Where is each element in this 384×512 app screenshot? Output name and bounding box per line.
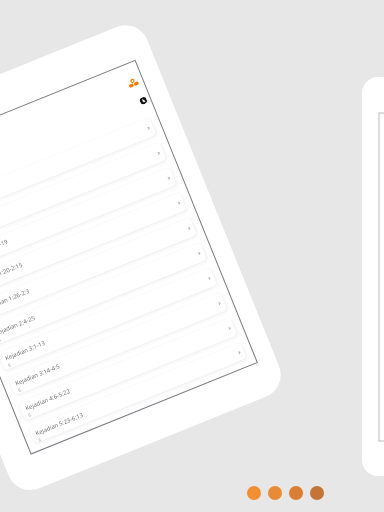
staticText: 5 bbox=[17, 387, 22, 394]
button[interactable]: Page indicator bbox=[310, 486, 324, 500]
staticText: 5 bbox=[38, 437, 42, 442]
button[interactable]: Page indicator bbox=[289, 486, 303, 500]
staticText: Kejadian 3:1-13 bbox=[4, 339, 47, 362]
button[interactable]: Kejadian 3:14-4:5 bbox=[8, 292, 227, 396]
staticText: Kejadian 1:20-2:15 bbox=[0, 261, 24, 287]
button[interactable]: Kejadian 1:20-2:15 bbox=[0, 192, 187, 296]
staticText: Kejadian 1:26-2:3 bbox=[0, 287, 31, 312]
button[interactable]: Page indicator bbox=[247, 486, 261, 500]
button[interactable]: Account bbox=[126, 76, 140, 90]
button[interactable]: Kejadian 1:14-19 bbox=[0, 167, 177, 271]
button[interactable]: Kejadian 2:4-25 bbox=[0, 242, 207, 346]
staticText: Kejadian 4:6-5:22 bbox=[24, 387, 72, 412]
button[interactable]: Kejadian 3:1-13 bbox=[0, 267, 217, 371]
button[interactable]: Kejadian 4:6-5:22 bbox=[18, 317, 237, 421]
staticText: 5 bbox=[0, 337, 2, 344]
staticText: Kejadian 2:4-25 bbox=[0, 314, 37, 337]
button[interactable]: Page indicator bbox=[268, 486, 282, 500]
button[interactable]: Kejadian 1:6-13 bbox=[0, 142, 167, 245]
staticText: Kejadian 1:14-19 bbox=[0, 238, 9, 262]
staticText: Kejadian 3:14-4:5 bbox=[14, 362, 62, 387]
staticText: Kejadian 5:23-6:13 bbox=[34, 411, 85, 437]
button[interactable]: Kejadian 1:26-2:3 bbox=[0, 217, 197, 321]
button[interactable]: Kejadian 5:23-6:13 bbox=[28, 342, 247, 444]
staticText: 5 bbox=[7, 362, 12, 369]
staticText: 5 bbox=[28, 412, 33, 419]
button[interactable]: Pointer bbox=[139, 96, 148, 105]
